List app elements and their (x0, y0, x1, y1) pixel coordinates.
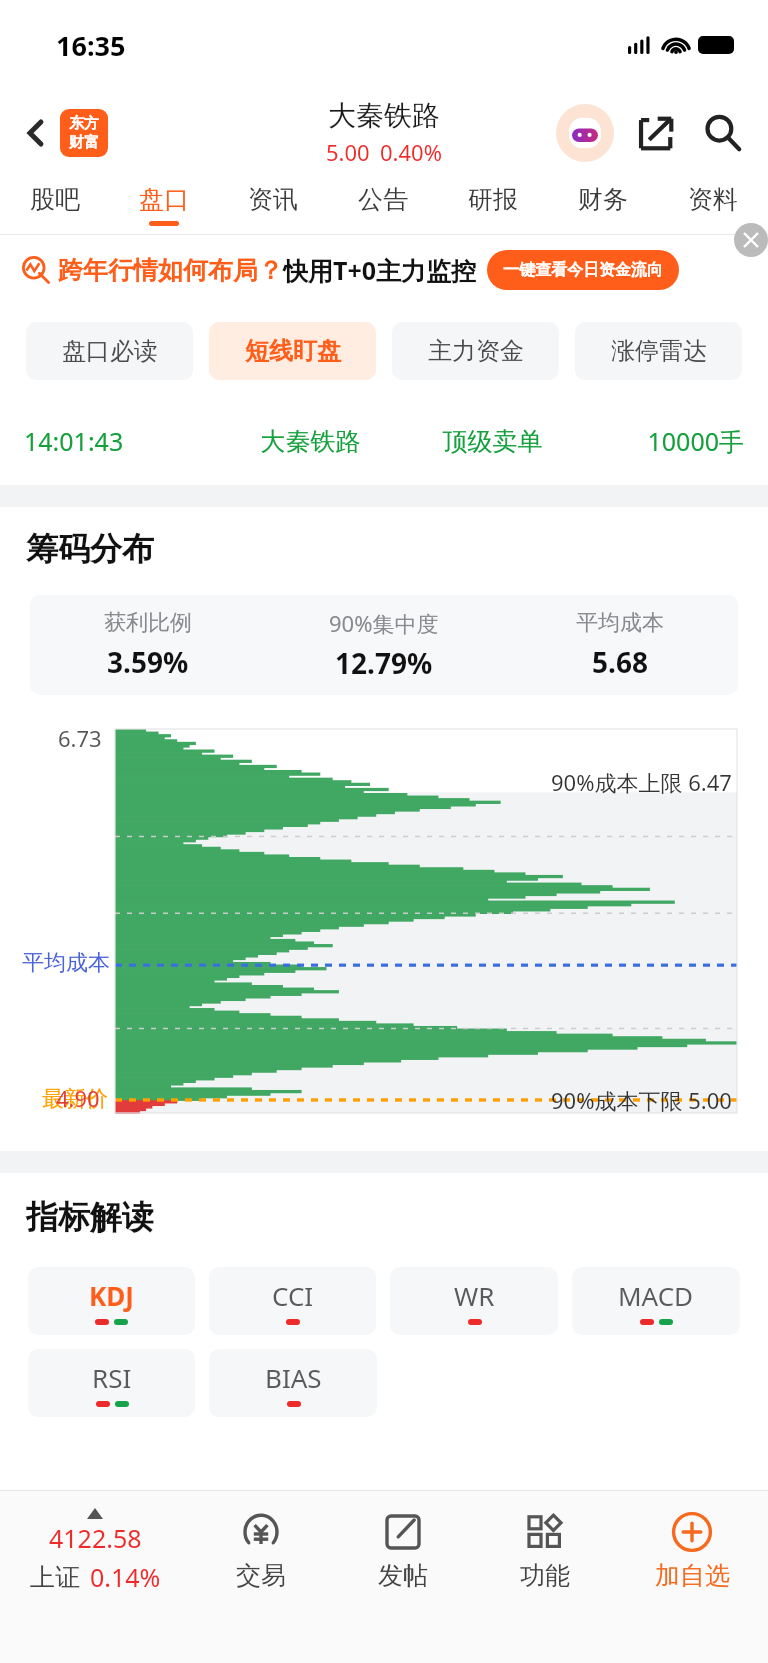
staticText: 跨年行情如何布局？ (58, 255, 283, 286)
button[interactable]: 发帖 (332, 1491, 474, 1611)
button[interactable]: Close (734, 223, 768, 257)
button[interactable]: 交易 (190, 1491, 332, 1611)
staticText: RSI (92, 1360, 132, 1395)
staticText: 顶级卖单 (406, 426, 579, 457)
staticText: 90%集中度 (329, 608, 439, 638)
staticText: 盘口必读 (62, 336, 158, 366)
staticText: 平均成本 (22, 949, 110, 977)
staticText: 一键查看今日资金流向 (503, 260, 663, 280)
staticText: 筹码分布 (26, 529, 154, 569)
staticText: 主力资金 (428, 336, 524, 366)
staticText: 90%成本下限 5.00 (551, 1085, 732, 1115)
staticText: BIAS (265, 1360, 322, 1395)
staticText: 3.59% (107, 643, 189, 681)
button[interactable]: Back (14, 110, 60, 156)
button[interactable]: RSI (28, 1349, 195, 1417)
staticText: 快用T+0主力监控 (283, 253, 477, 287)
staticText: 最新价 (42, 1085, 108, 1113)
staticText: MACD (618, 1278, 694, 1313)
staticText: 研报 (468, 184, 518, 215)
staticText: 资料 (688, 184, 738, 215)
staticText: 盘口 (139, 184, 189, 215)
button[interactable]: MACD (572, 1267, 740, 1335)
button[interactable]: 盘口必读 (26, 322, 193, 380)
staticText: 5.68 (592, 643, 648, 681)
staticText: 14:01:43 (24, 424, 215, 458)
button[interactable]: 涨停雷达 (575, 322, 742, 380)
staticText: 上证 (30, 1562, 80, 1593)
button[interactable]: 股吧 (0, 175, 109, 235)
staticText: 平均成本 (576, 609, 664, 637)
button[interactable]: 短线盯盘 (209, 322, 376, 380)
button[interactable]: 研报 (438, 175, 548, 235)
staticText: 4.90 (56, 1083, 100, 1113)
button[interactable]: 4122.58 (0, 1491, 190, 1611)
button[interactable]: BIAS (209, 1349, 377, 1417)
button[interactable]: Share (630, 107, 682, 159)
staticText: 指标解读 (26, 1197, 154, 1237)
staticText: 5.00 (326, 137, 370, 167)
button[interactable]: 主力资金 (392, 322, 559, 380)
button[interactable]: 财务 (548, 175, 658, 235)
staticText: 90%成本上限 6.47 (551, 767, 732, 797)
button[interactable]: 资料 (658, 175, 768, 235)
button[interactable]: 东方财富 (60, 109, 108, 157)
staticText: 6.73 (58, 723, 102, 753)
staticText: 功能 (520, 1560, 570, 1591)
staticText: 发帖 (378, 1560, 428, 1591)
staticText: 东方 (69, 114, 99, 133)
staticText: WR (454, 1278, 495, 1313)
staticText: 财富 (69, 133, 99, 152)
button[interactable]: WR (390, 1267, 558, 1335)
button[interactable]: 一键查看今日资金流向 (487, 250, 679, 290)
staticText: 大秦铁路 (215, 426, 406, 457)
staticText: 4122.58 (49, 1521, 142, 1555)
button[interactable]: 公告 (328, 175, 438, 235)
button[interactable]: 资讯 (218, 175, 328, 235)
button[interactable]: Search (696, 106, 750, 160)
staticText: 资讯 (248, 184, 298, 215)
staticText: 10000手 (579, 424, 744, 458)
staticText: KDJ (89, 1278, 134, 1313)
staticText: 交易 (236, 1560, 286, 1591)
button[interactable]: KDJ (28, 1267, 195, 1335)
button[interactable]: CCI (209, 1267, 376, 1335)
button[interactable]: 加自选 (616, 1491, 768, 1611)
button[interactable]: AI助手 (556, 104, 614, 162)
staticText: 短线盯盘 (245, 336, 341, 366)
staticText: 股吧 (30, 184, 80, 215)
staticText: 12.79% (335, 644, 433, 682)
staticText: 16:35 (56, 27, 126, 64)
staticText: 大秦铁路 (328, 98, 440, 133)
button[interactable]: 盘口 (109, 175, 218, 235)
staticText: 涨停雷达 (611, 336, 707, 366)
staticText: 财务 (578, 184, 628, 215)
staticText: 获利比例 (104, 609, 192, 637)
button[interactable]: 功能 (474, 1491, 616, 1611)
staticText: 0.40% (380, 137, 442, 167)
staticText: 公告 (358, 184, 408, 215)
staticText: 加自选 (655, 1560, 730, 1591)
staticText: 0.14% (90, 1560, 161, 1594)
staticText: CCI (272, 1278, 314, 1313)
button[interactable]: 14:01:43 (24, 424, 744, 458)
